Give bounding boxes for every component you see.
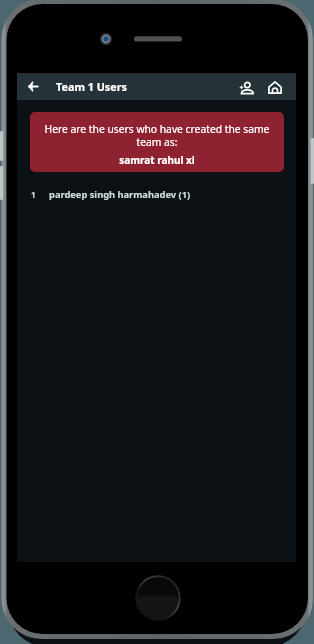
staticText: Team 1 Users (56, 79, 127, 94)
button[interactable]: Back (17, 73, 48, 100)
button[interactable]: 1 (17, 172, 296, 216)
staticText: Here are the users who have created the … (40, 122, 274, 149)
staticText: pardeep singh harmahadev (1) (49, 188, 191, 201)
button[interactable]: Add user (236, 73, 262, 100)
staticText: samrat rahul xi (119, 153, 195, 167)
button[interactable]: Home (262, 73, 288, 100)
staticText: 1 (31, 189, 36, 200)
